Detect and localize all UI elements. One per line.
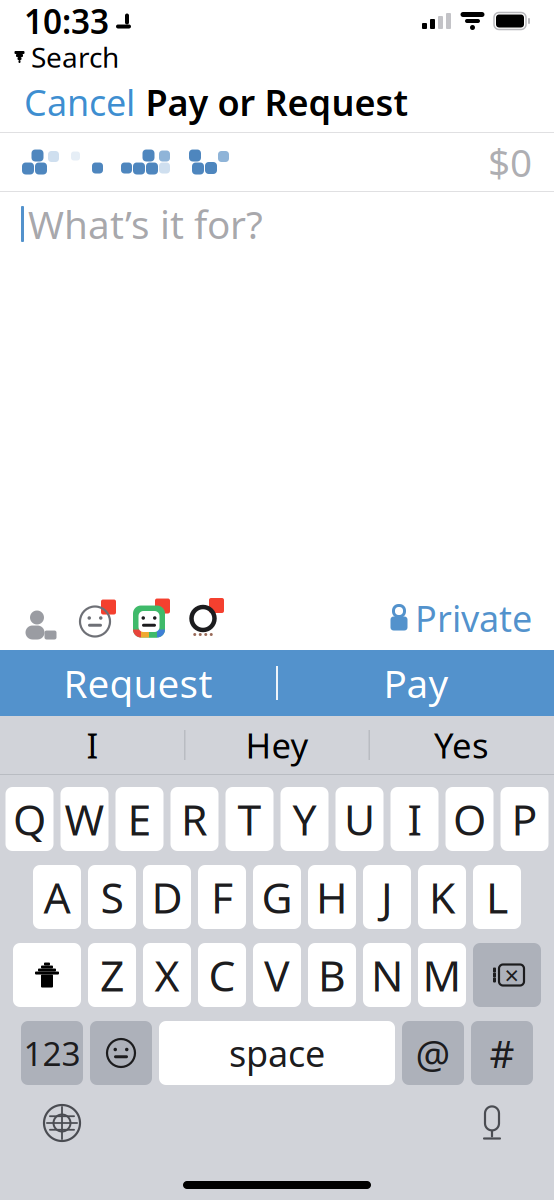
button[interactable]: Pay bbox=[278, 650, 554, 716]
button[interactable]: Stickers bbox=[68, 587, 122, 649]
button[interactable]: 123 bbox=[21, 1021, 83, 1085]
staticText: Z bbox=[100, 947, 124, 1003]
button[interactable]: Next keyboard bbox=[26, 1095, 98, 1151]
staticText: E bbox=[127, 791, 151, 847]
button[interactable]: $0 bbox=[0, 133, 554, 191]
staticText: M bbox=[422, 947, 461, 1003]
staticText: H bbox=[316, 869, 348, 925]
button[interactable]: @ bbox=[402, 1021, 464, 1085]
staticText: C bbox=[208, 947, 235, 1003]
staticText: R bbox=[181, 791, 208, 847]
staticText: N bbox=[371, 947, 403, 1003]
button[interactable]: App Store app bbox=[176, 587, 230, 649]
staticText: V bbox=[264, 947, 290, 1003]
staticText: Y bbox=[292, 791, 316, 847]
button[interactable]: Cancel bbox=[0, 64, 159, 140]
button[interactable]: E bbox=[115, 787, 163, 851]
button[interactable]: B bbox=[308, 943, 356, 1007]
staticText: I bbox=[407, 791, 421, 847]
staticText: S bbox=[100, 869, 123, 925]
button[interactable]: W bbox=[60, 787, 108, 851]
button[interactable]: R bbox=[170, 787, 218, 851]
button[interactable]: N bbox=[363, 943, 411, 1007]
staticText: What’s it for? bbox=[28, 198, 263, 250]
staticText: O bbox=[453, 791, 486, 847]
staticText: L bbox=[486, 869, 508, 925]
button[interactable]: Delete bbox=[473, 943, 541, 1007]
button[interactable]: Yes bbox=[370, 716, 553, 774]
staticText: Pay bbox=[383, 657, 448, 709]
staticText: Search bbox=[31, 38, 119, 76]
button[interactable]: I bbox=[390, 787, 438, 851]
staticText: X bbox=[154, 947, 179, 1003]
staticText: Hey bbox=[245, 722, 308, 768]
staticText: B bbox=[318, 947, 346, 1003]
staticText: $0 bbox=[488, 136, 532, 188]
button[interactable]: Q bbox=[5, 787, 53, 851]
button[interactable]: U bbox=[335, 787, 383, 851]
staticText: 10:33 bbox=[24, 0, 109, 43]
button[interactable]: L bbox=[473, 865, 521, 929]
staticText: U bbox=[344, 791, 375, 847]
button[interactable]: I bbox=[1, 716, 184, 774]
button[interactable]: Y bbox=[280, 787, 328, 851]
button[interactable]: D bbox=[143, 865, 191, 929]
button[interactable]: T bbox=[225, 787, 273, 851]
staticText: Pay or Request bbox=[145, 78, 408, 126]
staticText: # bbox=[489, 1027, 514, 1079]
button[interactable]: # bbox=[471, 1021, 533, 1085]
staticText: G bbox=[261, 869, 292, 925]
staticText: Yes bbox=[434, 722, 489, 768]
staticText: @ bbox=[415, 1027, 450, 1079]
staticText: J bbox=[381, 869, 393, 925]
button[interactable]: H bbox=[308, 865, 356, 929]
staticText: A bbox=[43, 869, 70, 925]
button[interactable]: A bbox=[33, 865, 81, 929]
button[interactable]: Hey bbox=[185, 716, 368, 774]
staticText: Request bbox=[63, 657, 212, 709]
button[interactable]: space bbox=[159, 1021, 395, 1085]
button[interactable]: F bbox=[198, 865, 246, 929]
button[interactable]: Contacts bbox=[14, 587, 68, 649]
staticText: K bbox=[429, 869, 455, 925]
button[interactable]: Request bbox=[0, 650, 276, 716]
button[interactable]: Emoji bbox=[90, 1021, 152, 1085]
button[interactable]: Z bbox=[88, 943, 136, 1007]
staticText: 123 bbox=[23, 1031, 80, 1075]
button[interactable]: Memoji bbox=[122, 587, 176, 649]
button[interactable]: X bbox=[143, 943, 191, 1007]
staticText: Q bbox=[13, 791, 46, 847]
staticText: × bbox=[504, 958, 518, 992]
staticText: W bbox=[64, 791, 104, 847]
button[interactable]: K bbox=[418, 865, 466, 929]
button[interactable]: O bbox=[445, 787, 493, 851]
staticText: Private bbox=[415, 594, 532, 642]
button[interactable]: S bbox=[88, 865, 136, 929]
button[interactable]: G bbox=[253, 865, 301, 929]
staticText: T bbox=[237, 791, 261, 847]
staticText: P bbox=[511, 791, 537, 847]
staticText: F bbox=[211, 869, 233, 925]
button[interactable]: C bbox=[198, 943, 246, 1007]
button[interactable]: Dictation bbox=[456, 1095, 528, 1151]
staticText: D bbox=[151, 869, 182, 925]
button[interactable]: J bbox=[363, 865, 411, 929]
button[interactable]: Search bbox=[0, 42, 554, 72]
button[interactable]: P bbox=[500, 787, 548, 851]
button[interactable]: Private bbox=[382, 587, 540, 649]
button[interactable]: What’s it for? bbox=[0, 192, 554, 256]
button[interactable]: Shift bbox=[13, 943, 81, 1007]
staticText: Cancel bbox=[24, 78, 135, 126]
button[interactable]: V bbox=[253, 943, 301, 1007]
staticText: I bbox=[86, 722, 98, 768]
button[interactable]: M bbox=[418, 943, 466, 1007]
staticText: space bbox=[229, 1029, 325, 1077]
